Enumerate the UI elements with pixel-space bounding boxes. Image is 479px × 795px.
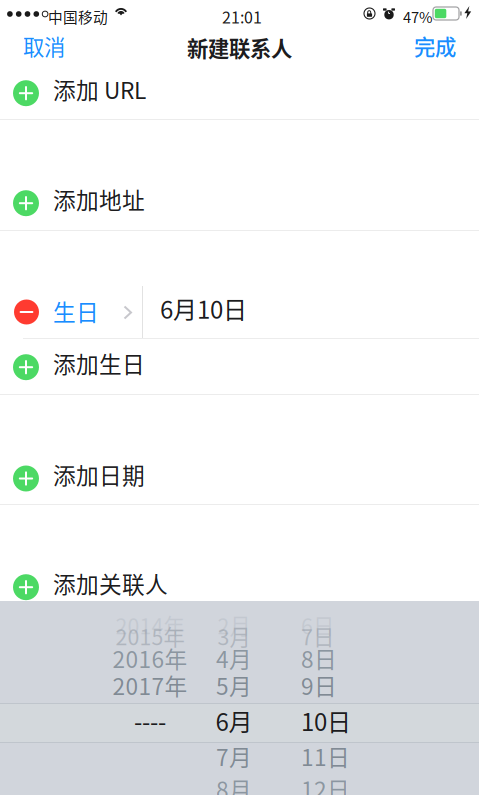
button[interactable]: 完成 [400, 23, 479, 73]
staticText: 生日 [53, 295, 99, 327]
staticText: 10日 [301, 703, 351, 738]
staticText: 6月10日 [160, 291, 247, 326]
staticText: 2015年 [115, 621, 184, 651]
button[interactable]: 添加关联人 [0, 560, 479, 601]
staticText: 3月 [217, 621, 250, 651]
staticText: 5月 [216, 669, 252, 701]
staticText: 添加 URL [53, 73, 146, 105]
button[interactable]: 添加日期 [0, 450, 479, 504]
staticText: 添加日期 [53, 458, 145, 491]
staticText: 完成 [414, 31, 456, 61]
staticText: 7月 [216, 740, 252, 772]
staticText: 8日 [301, 642, 337, 674]
staticText: 47% [403, 6, 433, 27]
button[interactable]: 添加 URL [0, 70, 479, 119]
staticText: 11日 [301, 740, 350, 772]
staticText: 新建联系人 [187, 32, 292, 63]
staticText: 9日 [301, 669, 337, 701]
button[interactable]: 生日 [0, 286, 479, 338]
staticText: 4月 [216, 642, 252, 674]
staticText: 添加生日 [53, 347, 145, 379]
staticText: ---- [134, 703, 166, 738]
button[interactable]: 添加地址 [0, 177, 479, 230]
staticText: 21:01 [222, 5, 262, 28]
staticText: 添加关联人 [53, 567, 168, 599]
staticText: 12日 [301, 772, 350, 795]
staticText: 7日 [301, 621, 334, 651]
staticText: 6日 [301, 610, 334, 640]
staticText: 取消 [23, 31, 65, 61]
staticText: 2月 [217, 610, 250, 640]
button[interactable]: 取消 [0, 23, 79, 73]
button[interactable]: 添加生日 [0, 339, 479, 394]
staticText: 中国移动 [48, 6, 108, 27]
staticText: 2017年 [112, 669, 187, 701]
staticText: 8月 [216, 772, 252, 795]
staticText: 6月 [215, 703, 252, 738]
staticText: 添加地址 [53, 183, 145, 215]
staticText: 2016年 [112, 642, 187, 674]
staticText: 2014年 [115, 610, 184, 640]
